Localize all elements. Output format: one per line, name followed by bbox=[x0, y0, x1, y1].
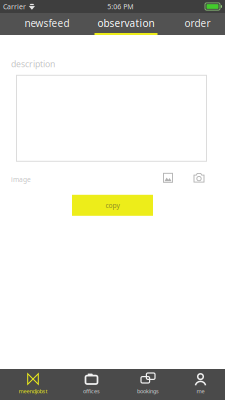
staticText: order bbox=[184, 16, 210, 30]
button[interactable]: me bbox=[176, 369, 225, 400]
staticText: 5:06 PM bbox=[107, 2, 133, 11]
button[interactable]: meendjobst bbox=[3, 369, 63, 400]
button[interactable]: bookings bbox=[120, 369, 176, 400]
staticText: Carrier bbox=[3, 2, 26, 11]
button[interactable]: observation bbox=[94, 13, 158, 35]
staticText: meendjobst bbox=[18, 387, 47, 395]
button[interactable]: Choose photo bbox=[158, 171, 178, 185]
staticText: me bbox=[196, 387, 204, 395]
staticText: image bbox=[11, 175, 31, 184]
button[interactable]: newsfeed bbox=[0, 13, 94, 35]
button[interactable]: copy bbox=[72, 195, 153, 216]
button[interactable]: offices bbox=[63, 369, 120, 400]
button[interactable]: order bbox=[158, 13, 225, 35]
button[interactable]: Take photo bbox=[189, 171, 209, 185]
staticText: observation bbox=[97, 16, 154, 30]
staticText: offices bbox=[83, 387, 100, 395]
staticText: bookings bbox=[137, 387, 159, 395]
staticText: newsfeed bbox=[24, 16, 69, 30]
staticText: copy bbox=[105, 201, 119, 210]
staticText: description bbox=[11, 58, 55, 70]
